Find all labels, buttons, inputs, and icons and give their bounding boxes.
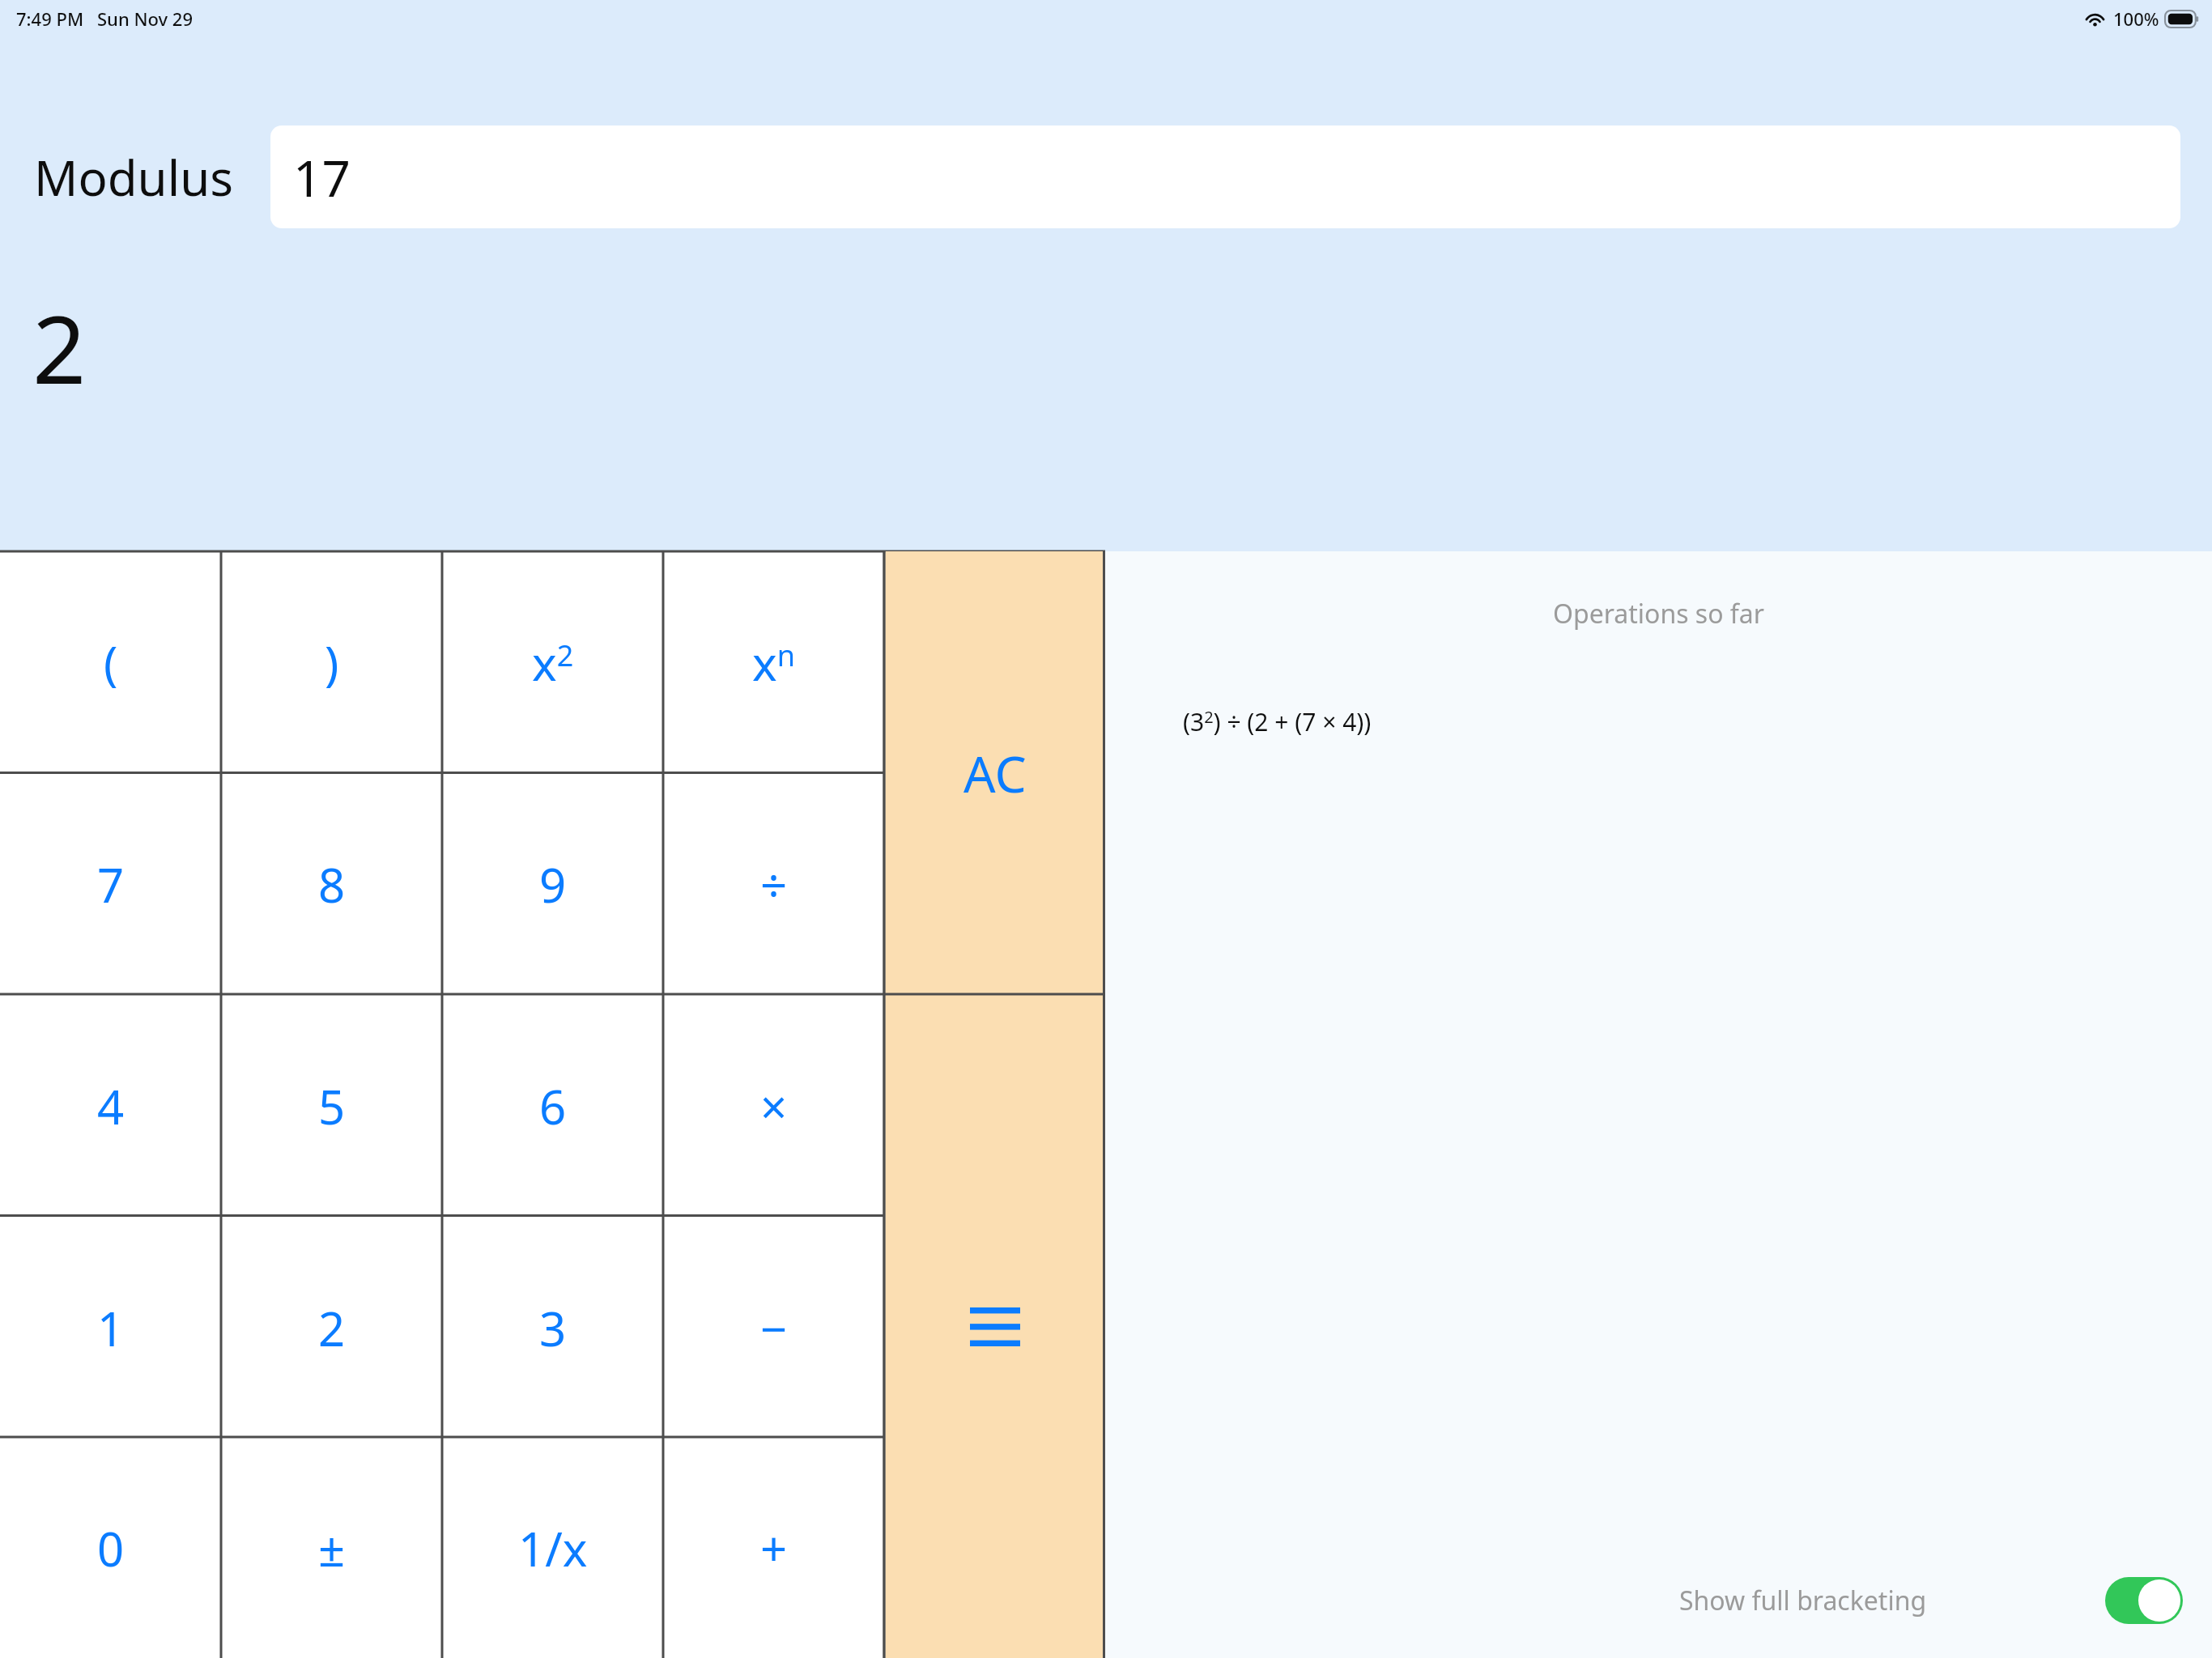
button[interactable]: ×	[663, 995, 884, 1217]
button[interactable]: )	[221, 551, 442, 773]
button[interactable]: AC	[884, 551, 1105, 994]
staticText: 4	[97, 1074, 125, 1138]
button[interactable]: Show full bracketing	[1679, 1577, 2183, 1624]
button[interactable]: 4	[0, 995, 221, 1217]
staticText: 6	[539, 1074, 567, 1138]
staticText: (32) ÷ (2 + (7 × 4))	[1183, 705, 1372, 738]
staticText: Sun Nov 29	[97, 6, 193, 31]
button[interactable]: 1/x	[442, 1439, 663, 1658]
button[interactable]: ±	[221, 1439, 442, 1658]
staticText: 2	[32, 283, 87, 411]
button[interactable]: +	[663, 1439, 884, 1658]
staticText: 3	[539, 1296, 567, 1360]
button[interactable]: 3	[442, 1217, 663, 1439]
staticText: 5	[318, 1074, 346, 1138]
button[interactable]: 1	[0, 1217, 221, 1439]
staticText: 0	[97, 1516, 125, 1580]
button[interactable]: 0	[0, 1439, 221, 1658]
staticText: −	[760, 1296, 788, 1360]
staticText: AC	[963, 739, 1027, 807]
staticText: 7	[97, 852, 125, 916]
staticText: 7:49 PM	[16, 6, 84, 31]
staticText: ±	[318, 1516, 346, 1580]
staticText: Modulus	[34, 144, 233, 210]
staticText: (	[104, 631, 118, 695]
staticText: xn	[752, 631, 795, 695]
button[interactable]: xn	[663, 551, 884, 773]
staticText: 9	[539, 852, 567, 916]
button[interactable]: Equals	[884, 994, 1105, 1658]
button[interactable]: 8	[221, 773, 442, 995]
staticText: ×	[760, 1074, 788, 1138]
button[interactable]: 9	[442, 773, 663, 995]
staticText: ÷	[760, 852, 788, 916]
staticText: )	[325, 631, 339, 695]
button[interactable]: 7	[0, 773, 221, 995]
staticText: 1	[97, 1296, 125, 1360]
staticText: +	[760, 1516, 788, 1580]
staticText: Show full bracketing	[1679, 1583, 1927, 1618]
staticText: 2	[318, 1296, 346, 1360]
button[interactable]: 5	[221, 995, 442, 1217]
staticText: x2	[532, 631, 574, 695]
staticText: 100%	[2113, 6, 2159, 31]
button[interactable]: 2	[221, 1217, 442, 1439]
button[interactable]: x2	[442, 551, 663, 773]
button[interactable]: 6	[442, 995, 663, 1217]
button[interactable]: (	[0, 551, 221, 773]
staticText: 1/x	[518, 1516, 588, 1580]
staticText: Operations so far	[1553, 596, 1765, 631]
button[interactable]: ÷	[663, 773, 884, 995]
staticText: 17	[293, 143, 351, 211]
button[interactable]: 17	[270, 125, 2180, 228]
button[interactable]: −	[663, 1217, 884, 1439]
staticText: 8	[318, 852, 346, 916]
